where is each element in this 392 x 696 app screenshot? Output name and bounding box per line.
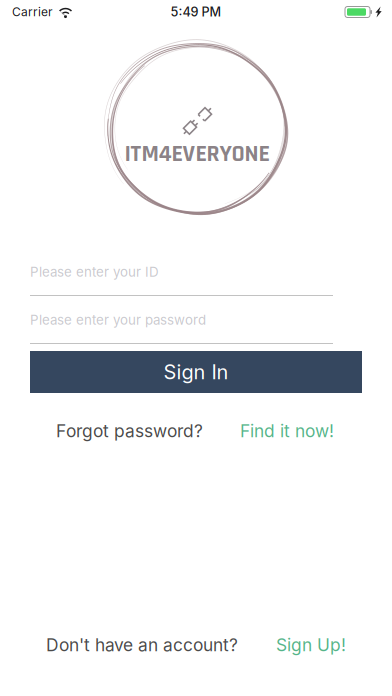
- staticText: ITM4EVERYONE: [124, 139, 269, 169]
- staticText: Find it now!: [240, 420, 334, 441]
- staticText: Carrier: [12, 5, 53, 19]
- staticText: Please enter your password: [30, 312, 206, 328]
- staticText: Sign In: [163, 360, 228, 384]
- staticText: Don't have an account?: [46, 634, 238, 655]
- staticText: 5:49 PM: [170, 4, 221, 20]
- staticText: Please enter your ID: [30, 264, 159, 280]
- staticText: Sign Up!: [276, 634, 346, 655]
- button[interactable]: Forgot password?: [56, 420, 203, 441]
- button[interactable]: Sign Up!: [276, 634, 346, 655]
- staticText: Forgot password?: [56, 420, 203, 441]
- button[interactable]: Find it now!: [240, 420, 334, 441]
- button[interactable]: Sign In: [30, 351, 362, 393]
